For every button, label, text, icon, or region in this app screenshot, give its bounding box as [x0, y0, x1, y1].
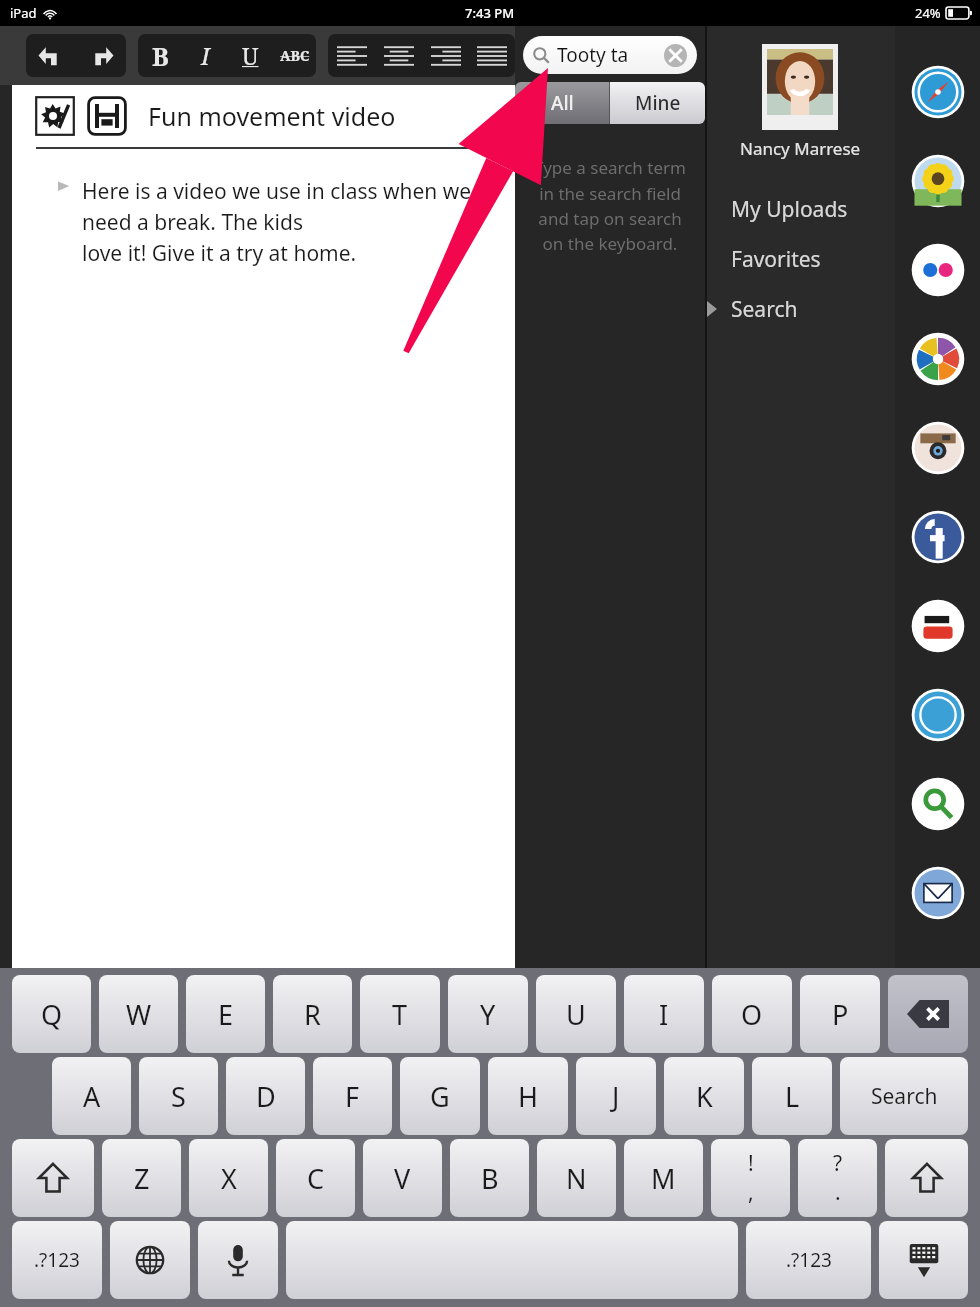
button[interactable]: Search: [705, 284, 895, 334]
button[interactable]: Save: [86, 95, 128, 137]
button[interactable]: Mine: [610, 82, 705, 124]
button[interactable]: X: [189, 1139, 268, 1217]
button[interactable]: Align right: [422, 34, 469, 77]
staticText: 7:43 PM: [465, 4, 515, 22]
button[interactable]: Change keyboard: [110, 1221, 190, 1299]
button[interactable]: Exclamation comma: [711, 1139, 790, 1217]
button[interactable]: YouTube: [908, 596, 968, 656]
button[interactable]: Align center: [375, 34, 422, 77]
button[interactable]: A: [52, 1057, 131, 1135]
button[interactable]: T: [360, 975, 440, 1053]
staticText: All: [551, 90, 574, 116]
button[interactable]: Facebook: [908, 507, 968, 567]
button[interactable]: Profile photo: [762, 44, 838, 130]
button[interactable]: I: [624, 975, 704, 1053]
button[interactable]: E: [186, 975, 265, 1053]
staticText: Fun movement video: [148, 99, 396, 133]
staticText: W: [126, 996, 152, 1033]
button[interactable]: U: [536, 975, 616, 1053]
button[interactable]: Instagram: [908, 418, 968, 478]
staticText: Search: [731, 295, 798, 324]
button[interactable]: Bold: [138, 34, 183, 77]
staticText: F: [345, 1078, 360, 1115]
button[interactable]: V: [363, 1139, 442, 1217]
button[interactable]: R: [273, 975, 352, 1053]
button[interactable]: Safari: [908, 62, 968, 122]
staticText: X: [221, 1160, 237, 1197]
button[interactable]: Undo: [26, 34, 76, 77]
button[interactable]: Shift: [885, 1139, 968, 1217]
button[interactable]: Question period: [798, 1139, 877, 1217]
button[interactable]: K: [664, 1057, 744, 1135]
button[interactable]: N: [537, 1139, 616, 1217]
staticText: E: [218, 996, 234, 1033]
button[interactable]: My Uploads: [705, 184, 895, 234]
button[interactable]: Dictation: [198, 1221, 278, 1299]
staticText: L: [785, 1078, 800, 1115]
button[interactable]: Shift: [12, 1139, 94, 1217]
button[interactable]: Vimeo: [908, 685, 968, 745]
button[interactable]: Photos: [908, 151, 968, 211]
staticText: G: [430, 1078, 450, 1115]
staticText: O: [741, 996, 763, 1033]
staticText: .: [835, 1178, 841, 1207]
staticText: D: [256, 1078, 276, 1115]
button[interactable]: C: [276, 1139, 355, 1217]
button[interactable]: Picasa: [908, 329, 968, 389]
button[interactable]: All: [515, 82, 609, 124]
staticText: Type a search term in the search field a…: [515, 156, 705, 255]
button[interactable]: W: [99, 975, 178, 1053]
button[interactable]: Tooty ta: [523, 36, 697, 74]
button[interactable]: F: [313, 1057, 392, 1135]
staticText: M: [651, 1160, 676, 1197]
button[interactable]: Settings: [34, 95, 76, 137]
button[interactable]: L: [752, 1057, 832, 1135]
button[interactable]: Email: [908, 863, 968, 923]
button[interactable]: Numbers: [12, 1221, 102, 1299]
staticText: 24%: [915, 4, 941, 22]
staticText: U: [242, 40, 259, 71]
staticText: .?123: [34, 1247, 80, 1273]
button[interactable]: Search: [840, 1057, 968, 1135]
staticText: B: [152, 39, 169, 73]
staticText: S: [171, 1078, 186, 1115]
button[interactable]: Clear search: [664, 44, 687, 67]
staticText: C: [307, 1160, 325, 1197]
button[interactable]: Flickr: [908, 240, 968, 300]
staticText: My Uploads: [731, 195, 848, 224]
button[interactable]: J: [576, 1057, 656, 1135]
button[interactable]: Backspace: [888, 975, 968, 1053]
button[interactable]: Redo: [76, 34, 126, 77]
staticText: Mine: [635, 90, 681, 116]
staticText: Y: [480, 996, 496, 1033]
button[interactable]: O: [712, 975, 792, 1053]
button[interactable]: G: [400, 1057, 480, 1135]
staticText: ,: [748, 1178, 754, 1207]
button[interactable]: Space: [286, 1221, 738, 1299]
staticText: N: [566, 1160, 587, 1197]
button[interactable]: Numbers: [746, 1221, 871, 1299]
button[interactable]: Italic: [183, 34, 228, 77]
staticText: H: [518, 1078, 539, 1115]
button[interactable]: M: [624, 1139, 703, 1217]
button[interactable]: D: [226, 1057, 305, 1135]
button[interactable]: Q: [12, 975, 91, 1053]
button[interactable]: Hide keyboard: [879, 1221, 968, 1299]
button[interactable]: Justify: [469, 34, 515, 77]
button[interactable]: Search: [908, 774, 968, 834]
staticText: B: [481, 1160, 499, 1197]
button[interactable]: Favorites: [705, 234, 895, 284]
staticText: P: [832, 996, 849, 1033]
staticText: R: [304, 996, 321, 1033]
button[interactable]: S: [139, 1057, 218, 1135]
button[interactable]: B: [450, 1139, 529, 1217]
button[interactable]: Strikethrough: [273, 34, 316, 77]
button[interactable]: Underline: [228, 34, 273, 77]
staticText: I: [659, 996, 669, 1033]
staticText: Nancy Marrese: [740, 137, 861, 160]
button[interactable]: Y: [448, 975, 528, 1053]
button[interactable]: P: [800, 975, 880, 1053]
button[interactable]: Z: [102, 1139, 181, 1217]
button[interactable]: Align left: [328, 34, 375, 77]
button[interactable]: H: [488, 1057, 568, 1135]
